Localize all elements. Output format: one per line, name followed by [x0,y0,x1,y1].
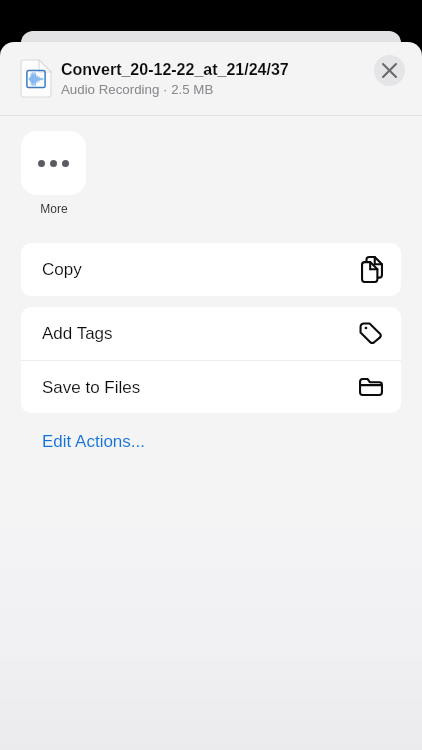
staticText: Audio Recording · 2.5 MB [61,82,214,97]
staticText: Save to Files [42,378,141,397]
staticText: Copy [42,260,82,279]
button[interactable]: Copy [21,243,401,296]
staticText: Edit Actions... [42,432,145,451]
button[interactable]: Add Tags [21,307,401,360]
staticText: More [40,202,68,215]
staticText: Convert_20-12-22_at_21/24/37 [61,61,289,79]
button[interactable]: More options [21,131,86,195]
button[interactable]: Close [374,55,405,86]
staticText: Add Tags [42,324,113,343]
button[interactable]: Edit Actions... [21,426,166,457]
button[interactable]: Save to Files [21,361,401,413]
